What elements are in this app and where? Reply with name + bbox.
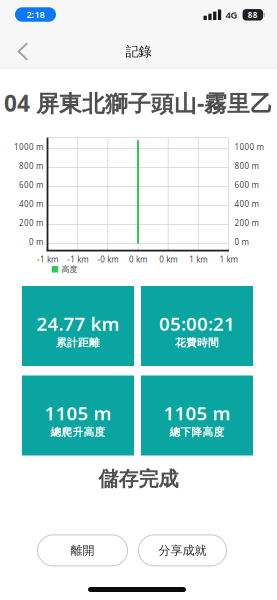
staticText: -1 km: [67, 254, 88, 265]
staticText: 分享成就: [158, 543, 206, 558]
button[interactable]: 離開: [38, 535, 128, 566]
staticText: 1000 m: [14, 142, 43, 152]
staticText: 200 m: [234, 218, 258, 228]
staticText: 05:00:21: [159, 311, 235, 336]
staticText: 0 m: [29, 237, 43, 247]
button[interactable]: Back: [0, 30, 44, 68]
button[interactable]: 分享成就: [138, 535, 226, 566]
staticText: 2:18: [26, 8, 44, 21]
staticText: 總爬升高度: [50, 426, 105, 439]
staticText: 1105 m: [44, 401, 111, 425]
staticText: 高度: [61, 264, 77, 274]
staticText: 600 m: [19, 180, 43, 190]
staticText: 1105 m: [163, 401, 230, 425]
staticText: 離開: [71, 543, 95, 558]
staticText: 800 m: [19, 161, 43, 171]
staticText: 800 m: [234, 161, 258, 171]
staticText: 記錄: [125, 43, 151, 60]
staticText: 04 屏東北獅子頭山-霧里乙: [4, 88, 273, 118]
staticText: 4G: [225, 9, 237, 21]
staticText: -0 km: [97, 254, 118, 265]
staticText: 1 km: [189, 254, 207, 265]
staticText: 24.77 km: [36, 311, 119, 336]
staticText: -1 km: [37, 254, 58, 265]
staticText: 花費時間: [175, 336, 219, 349]
staticText: 0 m: [234, 237, 248, 247]
staticText: 累計距離: [56, 336, 100, 349]
staticText: 88: [248, 9, 258, 20]
staticText: 總下降高度: [169, 426, 224, 439]
staticText: 400 m: [19, 199, 43, 209]
staticText: 0 km: [129, 254, 147, 265]
staticText: 600 m: [234, 180, 258, 190]
staticText: 200 m: [19, 218, 43, 228]
staticText: 1000 m: [234, 142, 263, 152]
staticText: 1 km: [219, 254, 237, 265]
staticText: 400 m: [234, 199, 258, 209]
staticText: 0 km: [159, 254, 177, 265]
button[interactable]: Return to recording app: [15, 7, 56, 22]
staticText: 儲存完成: [98, 467, 178, 491]
